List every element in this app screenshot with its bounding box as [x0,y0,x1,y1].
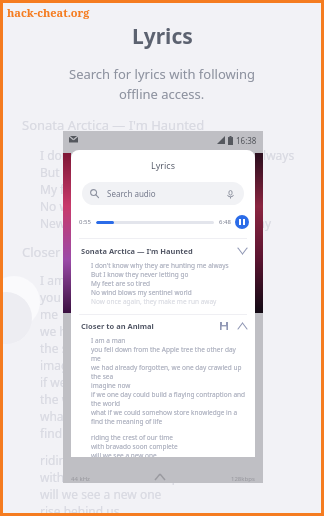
staticText: Closer to an Animal [81,321,154,331]
other: Expand [238,248,247,254]
staticText: me [40,306,58,322]
staticText: will we see a new one [40,486,162,502]
staticText: we had already forgotten, we one [40,323,230,339]
staticText: with bravado soon complete [40,469,201,485]
button[interactable]: Sonata Arctica — I'm Haunted [71,246,255,256]
staticText: rise behind us [40,503,120,516]
other: Collapse [238,323,247,329]
staticText: 128kbps [231,475,255,483]
staticText: 0:55 [79,218,91,226]
staticText: riding the crest of our time [91,433,173,442]
staticText: Now once again, they make me run away [91,297,217,306]
staticText: imagine now [40,357,113,373]
staticText: I am a man [40,272,104,288]
staticText: will we see a new one [91,451,157,457]
staticText: me [91,354,101,363]
staticText: 44 kHz [71,475,90,483]
staticText: the world [40,391,94,407]
staticText: what if we could somehow store knowledge… [91,408,249,417]
staticText: New once again, they make me run away [40,215,272,231]
staticText: My feet are so tired [40,181,149,197]
button[interactable]: Closer to an Animal [71,321,255,331]
other: Save [220,322,228,330]
staticText: Sonata Arctica — I'm Haunted [22,116,205,134]
staticText: But I know they never letting go [91,270,189,279]
staticText: offline access. [119,85,205,103]
staticText: the world [91,399,121,408]
staticText: But I know they never letting go [40,164,220,180]
staticText: with bravado soon complete [91,442,178,451]
button[interactable]: Search audio [82,182,244,205]
staticText: find the meaning of life [91,417,163,426]
staticText: 16:38 [236,135,257,146]
staticText: My feet are so tired [91,279,151,288]
staticText: the sea [91,372,114,381]
staticText: I don't know why they are hunting me alw… [91,261,229,270]
staticText: No wind blows my sentinel world [40,198,227,214]
staticText: No wind blows my sentinel world [91,288,192,297]
staticText: 6:48 [219,218,231,226]
staticText: Search audio [107,188,156,199]
button[interactable]: Voice search [224,188,236,200]
staticText: the sea [40,340,81,356]
staticText: Search for lyrics with following [69,65,256,83]
staticText: if we one day could build a flying [40,374,225,390]
staticText: riding the crest of our time [40,452,192,468]
staticText: Sonata Arctica — I'm Haunted [81,246,193,256]
staticText: Lyrics [151,159,175,171]
staticText: I don't know why they are hunting me alw… [40,147,295,163]
staticText: Closer to an Animal [22,243,141,261]
staticText: what if we could somehow store [40,408,222,424]
button[interactable]: Pause [235,215,249,229]
button[interactable] [96,221,214,224]
staticText: find the meaning of life [40,425,172,441]
staticText: you fell down from the Apple tree [40,289,229,305]
staticText: you fell down from the Apple tree the ot… [91,345,249,354]
staticText: imagine now [91,381,131,390]
staticText: I am a man [91,336,126,345]
staticText: hack-cheat.org [7,5,90,20]
staticText: we had already forgotten, we one day cra… [91,363,249,372]
staticText: if we one day could build a flaying cont… [91,390,249,399]
staticText: Lyrics [132,22,193,51]
